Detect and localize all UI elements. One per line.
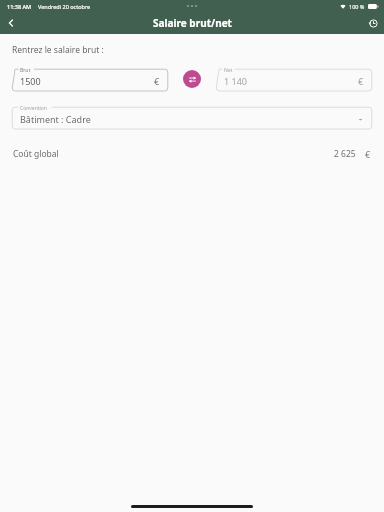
staticText: € — [358, 75, 364, 87]
staticText: Coût global — [13, 148, 59, 160]
staticText: 100 % — [349, 3, 365, 10]
staticText: Vendredi 20 octobre — [38, 3, 91, 10]
button[interactable]: Convention — [11, 104, 373, 130]
staticText: Net — [224, 67, 233, 74]
button[interactable]: History — [362, 12, 384, 34]
button[interactable]: Brut — [11, 66, 169, 92]
staticText: 1 140 — [224, 75, 247, 87]
staticText: 2 625 — [334, 148, 356, 160]
staticText: € — [154, 75, 160, 87]
staticText: Bâtiment : Cadre — [20, 113, 91, 125]
staticText: 11:38 AM — [7, 3, 32, 10]
button[interactable]: Back — [0, 12, 22, 34]
staticText: 1500 — [20, 75, 41, 87]
staticText: € — [365, 148, 371, 160]
staticText: Rentrez le salaire brut : — [12, 44, 104, 56]
staticText: Salaire brut/net — [153, 16, 232, 30]
staticText: Convention — [20, 105, 47, 112]
staticText: Brut — [20, 67, 31, 74]
button[interactable]: Swap brut and net — [183, 70, 201, 88]
button[interactable]: Net — [215, 66, 373, 92]
